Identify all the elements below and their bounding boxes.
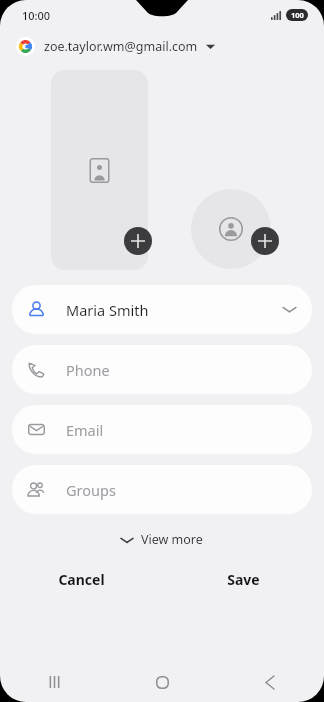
- staticText: 10:00: [22, 8, 51, 23]
- button[interactable]: Back: [216, 662, 324, 702]
- button[interactable]: Save: [162, 557, 324, 601]
- button[interactable]: Maria Smith: [12, 285, 312, 334]
- button[interactable]: Cancel: [0, 557, 162, 601]
- button[interactable]: Add cover photo: [51, 70, 148, 270]
- button[interactable]: Add profile photo: [251, 227, 279, 255]
- button[interactable]: zoe.taylor.wm@gmail.com: [0, 30, 324, 62]
- staticText: Groups: [66, 480, 116, 500]
- button[interactable]: View more: [109, 525, 215, 554]
- button[interactable]: Phone: [12, 345, 312, 394]
- button[interactable]: Email: [12, 405, 312, 454]
- button[interactable]: Add cover photo: [124, 227, 152, 255]
- staticText: Phone: [66, 360, 110, 380]
- button[interactable]: Recent apps: [0, 662, 108, 702]
- staticText: View more: [141, 531, 203, 548]
- staticText: Cancel: [58, 570, 105, 589]
- staticText: Save: [227, 570, 260, 589]
- staticText: Maria Smith: [66, 300, 149, 320]
- button[interactable]: Groups: [12, 465, 312, 514]
- button[interactable]: Home: [108, 662, 216, 702]
- staticText: Email: [66, 420, 104, 440]
- staticText: 100: [291, 10, 304, 20]
- button[interactable]: Add profile photo: [191, 189, 271, 269]
- staticText: zoe.taylor.wm@gmail.com: [44, 38, 198, 55]
